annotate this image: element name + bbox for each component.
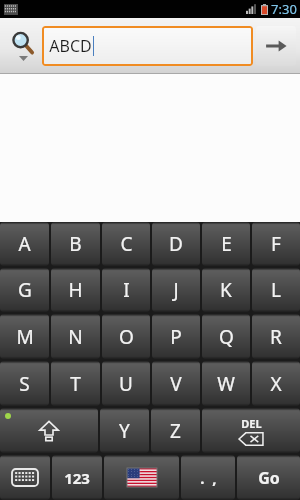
button[interactable]: K: [202, 268, 250, 312]
staticText: ABCD: [49, 35, 92, 57]
button[interactable]: 123: [52, 455, 102, 500]
button[interactable]: J: [152, 268, 200, 312]
button[interactable]: B: [51, 222, 100, 266]
staticText: M: [16, 324, 34, 350]
staticText: O: [119, 324, 134, 350]
staticText: Go: [258, 467, 280, 489]
staticText: B: [69, 231, 82, 257]
button[interactable]: L: [252, 268, 300, 312]
button[interactable]: Y: [100, 408, 149, 453]
staticText: S: [19, 371, 30, 397]
button[interactable]: C: [102, 222, 150, 266]
button[interactable]: T: [51, 361, 100, 406]
staticText: E: [221, 231, 232, 257]
staticText: N: [68, 324, 83, 350]
button[interactable]: H: [51, 268, 100, 312]
staticText: R: [270, 324, 282, 350]
button[interactable]: Search: [256, 26, 296, 66]
staticText: F: [271, 231, 281, 257]
button[interactable]: M: [0, 314, 49, 359]
staticText: I: [123, 277, 130, 303]
button[interactable]: I: [102, 268, 150, 312]
button[interactable]: ABCD: [42, 26, 253, 66]
button[interactable]: Language: [104, 455, 179, 500]
button[interactable]: E: [202, 222, 250, 266]
staticText: Z: [170, 418, 181, 444]
staticText: DEL: [241, 416, 262, 431]
staticText: H: [68, 277, 83, 303]
button[interactable]: A: [0, 222, 49, 266]
staticText: V: [170, 371, 182, 397]
staticText: X: [270, 371, 282, 397]
button[interactable]: R: [252, 314, 300, 359]
staticText: Q: [219, 324, 234, 350]
button[interactable]: X: [252, 361, 300, 406]
staticText: 123: [64, 468, 90, 488]
staticText: K: [220, 277, 232, 303]
button[interactable]: D: [152, 222, 200, 266]
button[interactable]: S: [0, 361, 49, 406]
staticText: 7:30: [271, 0, 297, 18]
button[interactable]: Go: [237, 455, 300, 500]
staticText: J: [173, 277, 179, 303]
button[interactable]: N: [51, 314, 100, 359]
staticText: C: [120, 231, 133, 257]
button[interactable]: O: [102, 314, 150, 359]
button[interactable]: . ,: [181, 455, 235, 500]
button[interactable]: U: [102, 361, 150, 406]
staticText: T: [70, 371, 81, 397]
button[interactable]: G: [0, 268, 49, 312]
staticText: D: [169, 231, 183, 257]
button[interactable]: Z: [151, 408, 200, 453]
staticText: A: [18, 231, 31, 257]
button[interactable]: V: [152, 361, 200, 406]
button[interactable]: Switch keyboard: [0, 455, 50, 500]
staticText: . ,: [200, 468, 217, 488]
staticText: U: [119, 371, 133, 397]
button[interactable]: Shift: [0, 408, 98, 453]
button[interactable]: F: [252, 222, 300, 266]
button[interactable]: Delete: [202, 408, 300, 453]
button[interactable]: P: [152, 314, 200, 359]
staticText: G: [18, 277, 32, 303]
staticText: Y: [119, 418, 130, 444]
button[interactable]: Q: [202, 314, 250, 359]
button[interactable]: Search provider: [4, 18, 42, 74]
staticText: L: [271, 277, 281, 303]
button[interactable]: W: [202, 361, 250, 406]
staticText: P: [170, 324, 182, 350]
staticText: W: [217, 371, 235, 397]
